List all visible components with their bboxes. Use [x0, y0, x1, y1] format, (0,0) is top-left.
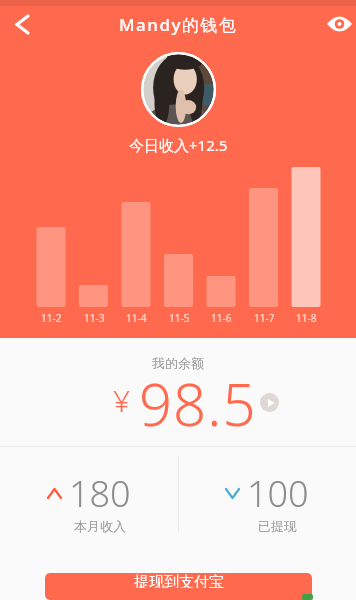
staticText: 我的余额: [152, 355, 204, 371]
staticText: 11-5: [169, 311, 190, 325]
staticText: 今日收入+12.5: [129, 135, 228, 155]
staticText: 100: [247, 469, 309, 518]
staticText: 11-3: [84, 311, 105, 325]
staticText: 已提现: [258, 518, 297, 534]
button[interactable]: [260, 393, 279, 412]
button[interactable]: 180: [0, 447, 178, 541]
staticText: 11-6: [211, 311, 232, 325]
staticText: 180: [69, 469, 131, 518]
staticText: ¥: [113, 380, 131, 421]
staticText: 98.5: [139, 364, 257, 436]
staticText: 11-4: [126, 311, 147, 325]
staticText: 11-2: [41, 311, 62, 325]
button[interactable]: [324, 9, 354, 39]
button[interactable]: 提现到支付宝: [45, 573, 312, 600]
button[interactable]: 100: [178, 447, 356, 541]
staticText: 本月收入: [74, 518, 126, 534]
button[interactable]: [4, 7, 38, 41]
staticText: 11-8: [296, 311, 317, 325]
staticText: 提现到支付宝: [134, 573, 224, 588]
staticText: 11-7: [254, 311, 275, 325]
staticText: Mandy的钱包: [119, 13, 238, 36]
